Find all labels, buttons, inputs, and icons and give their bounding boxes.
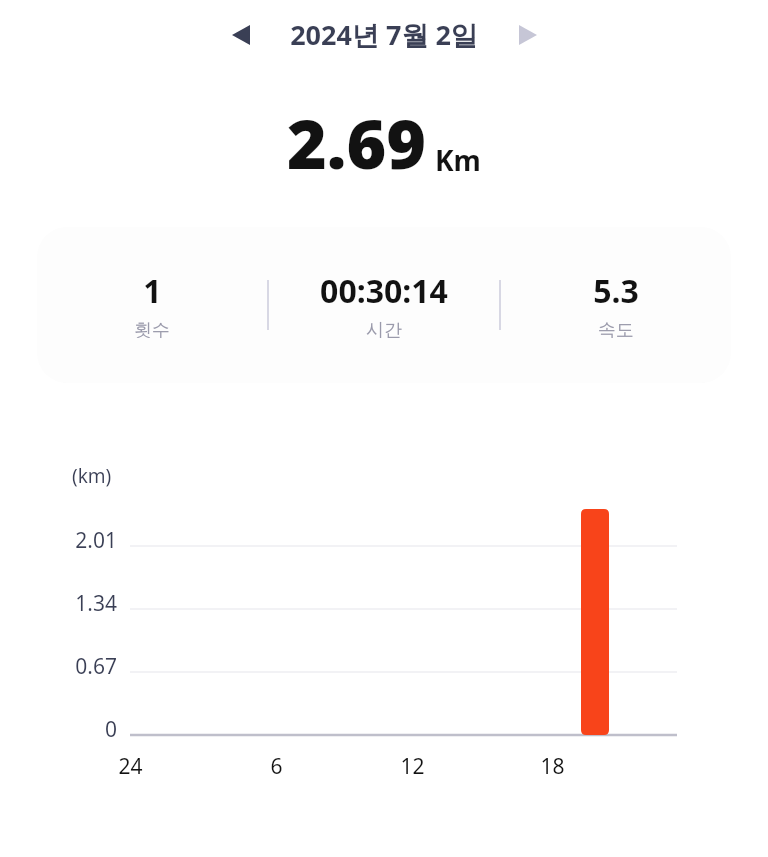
button[interactable]: Previous day <box>215 10 267 60</box>
button[interactable]: 1 <box>37 269 267 342</box>
button[interactable]: 1 <box>37 227 731 383</box>
staticText: 2024년 7월 2일 <box>290 16 478 53</box>
staticText: 18 <box>540 752 565 781</box>
button[interactable]: 2024년 7월 2일 <box>290 16 478 53</box>
staticText: 00:30:14 <box>320 269 448 313</box>
staticText: 6 <box>270 752 283 781</box>
staticText: Km <box>435 141 481 179</box>
button[interactable]: Next day <box>502 10 554 60</box>
staticText: 속도 <box>598 319 634 342</box>
staticText: 시간 <box>366 319 402 342</box>
staticText: 1.34 <box>75 589 117 618</box>
staticText: 횟수 <box>134 319 170 342</box>
button[interactable]: 5.3 <box>501 269 731 342</box>
staticText: 2.69 <box>287 96 427 189</box>
staticText: 2.01 <box>75 526 117 555</box>
staticText: 0.67 <box>75 652 117 681</box>
staticText: (km) <box>72 463 112 489</box>
staticText: 1 <box>143 269 162 313</box>
staticText: 24 <box>118 752 143 781</box>
staticText: 0 <box>104 715 117 744</box>
staticText: 12 <box>400 752 425 781</box>
button[interactable]: 00:30:14 <box>269 269 499 342</box>
staticText: 5.3 <box>593 269 639 313</box>
